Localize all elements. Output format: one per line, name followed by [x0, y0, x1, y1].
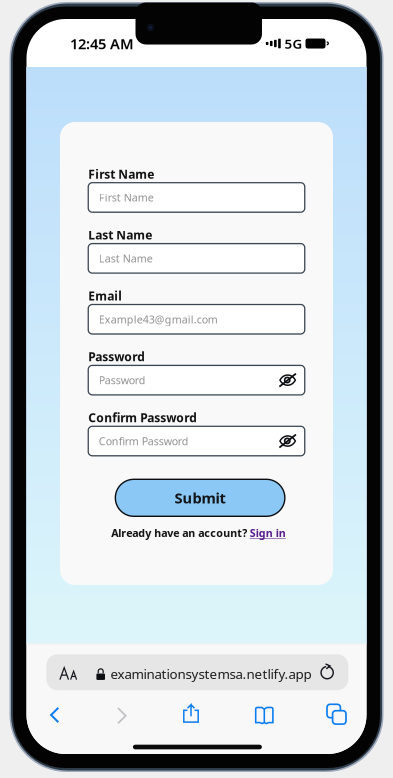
staticText: examinationsystemsa.netlify.app: [111, 665, 312, 683]
button[interactable]: Last Name: [88, 244, 305, 273]
staticText: Last Name: [99, 251, 153, 265]
button[interactable]: Sign in: [250, 526, 286, 540]
staticText: Already have an account?: [111, 526, 247, 540]
button[interactable]: Tabs: [308, 697, 364, 731]
button[interactable]: Back: [27, 698, 83, 732]
button[interactable]: Example43@gmail.com: [88, 304, 305, 334]
staticText: Confirm Password: [88, 410, 197, 425]
button[interactable]: Submit: [115, 479, 285, 516]
button[interactable]: First Name: [88, 183, 305, 212]
staticText: 5G: [284, 35, 302, 52]
button[interactable]: Share: [163, 696, 219, 730]
staticText: Password: [99, 373, 146, 387]
button[interactable]: Confirm Password: [88, 426, 305, 456]
staticText: First Name: [88, 166, 154, 182]
staticText: Sign in: [250, 526, 286, 540]
button[interactable]: Bookmarks: [236, 698, 292, 732]
staticText: Submit: [175, 488, 226, 508]
button[interactable]: Password: [88, 365, 305, 395]
staticText: First Name: [99, 190, 154, 205]
button[interactable]: Forward: [94, 699, 150, 733]
staticText: 12:45 AM: [70, 34, 134, 53]
staticText: Confirm Password: [99, 434, 189, 448]
staticText: Password: [88, 349, 145, 365]
button[interactable]: Reload: [310, 654, 344, 690]
staticText: Email: [88, 288, 122, 304]
button[interactable]: Text size: [50, 656, 86, 692]
staticText: Example43@gmail.com: [99, 312, 218, 326]
staticText: Last Name: [88, 227, 152, 243]
